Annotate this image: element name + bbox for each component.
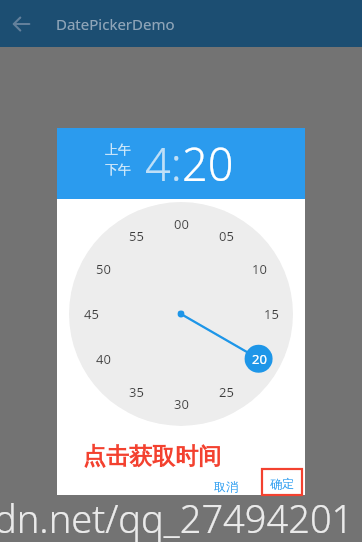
staticText: 20 <box>182 133 234 194</box>
staticText: 25 <box>219 383 234 401</box>
staticText: 4: <box>145 133 182 194</box>
staticText: 确定 <box>270 476 294 491</box>
staticText: dn.net/qq_27494201 <box>0 492 354 542</box>
button[interactable]: 取消 <box>206 475 246 497</box>
button[interactable]: 确定 <box>263 471 301 496</box>
staticText: 50 <box>96 260 111 278</box>
staticText: 55 <box>129 227 144 245</box>
staticText: 10 <box>252 260 267 278</box>
staticText: 下午 <box>105 161 131 177</box>
staticText: DatePickerDemo <box>56 14 175 34</box>
staticText: 45 <box>84 305 99 323</box>
staticText: 35 <box>129 383 144 401</box>
staticText: 20 <box>252 350 267 368</box>
staticText: 点击获取时间 <box>83 442 221 471</box>
button[interactable]: Back <box>6 9 36 39</box>
staticText: 上午 <box>105 141 131 157</box>
staticText: 15 <box>264 305 279 323</box>
staticText: 05 <box>219 227 234 245</box>
staticText: 取消 <box>214 479 238 494</box>
staticText: 00 <box>174 215 189 233</box>
staticText: 40 <box>96 350 111 368</box>
staticText: 30 <box>174 395 189 413</box>
